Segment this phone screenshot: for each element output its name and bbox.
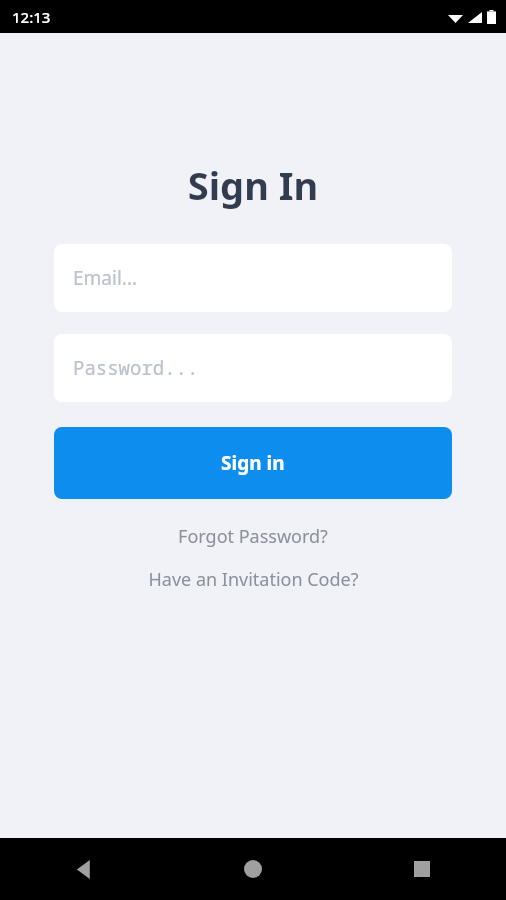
staticText: Have an Invitation Code? [148,567,359,592]
button[interactable]: Back [0,838,168,900]
button[interactable]: Email... [54,244,452,312]
staticText: Sign In [0,159,506,211]
button[interactable]: Have an Invitation Code? [140,563,367,596]
button[interactable]: Password... [54,334,452,402]
button[interactable]: Recent apps [337,838,506,900]
staticText: Forgot Password? [178,524,328,549]
staticText: Password... [73,355,199,381]
staticText: Email... [73,265,138,291]
staticText: Sign in [221,450,285,476]
button[interactable]: Home [168,838,337,900]
button[interactable]: Forgot Password? [170,520,336,553]
staticText: 12:13 [12,7,51,27]
button[interactable]: Sign in [54,427,452,499]
